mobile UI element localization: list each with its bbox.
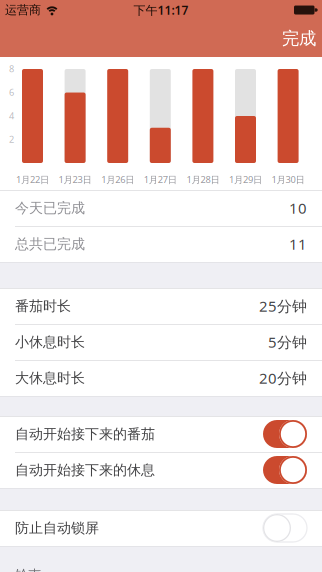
button[interactable]: 大休息时长	[0, 360, 322, 396]
button[interactable]: 完成	[282, 28, 322, 49]
staticText: 番茄时长	[15, 297, 71, 315]
staticText: 运营商	[5, 2, 41, 17]
staticText: 5分钟	[268, 332, 307, 352]
staticText: 1月28日	[186, 173, 219, 186]
staticText: 1月26日	[101, 173, 134, 186]
staticText: 铃声	[15, 567, 41, 572]
button[interactable]: 自动开始接下来的休息	[0, 452, 322, 488]
button[interactable]: 小休息时长	[0, 324, 322, 360]
staticText: 下午11:17	[133, 2, 188, 18]
staticText: 10	[289, 198, 307, 218]
staticText: 完成	[282, 28, 316, 49]
staticText: 大休息时长	[15, 369, 85, 387]
staticText: 自动开始接下来的休息	[15, 461, 155, 479]
staticText: 6	[9, 86, 14, 98]
staticText: 8	[9, 62, 14, 75]
staticText: 1月22日	[16, 173, 49, 186]
staticText: 1月30日	[272, 173, 305, 186]
staticText: 小休息时长	[15, 333, 85, 351]
staticText: 总共已完成	[15, 235, 85, 253]
staticText: 11	[289, 234, 307, 254]
staticText: 2	[9, 133, 14, 145]
staticText: 今天已完成	[15, 199, 85, 217]
staticText: 1月29日	[229, 173, 262, 186]
staticText: 1月23日	[59, 173, 92, 186]
staticText: 4	[9, 109, 14, 122]
button[interactable]: 自动开始接下来的番茄	[0, 416, 322, 452]
staticText: 防止自动锁屏	[15, 519, 99, 537]
button[interactable]: 防止自动锁屏	[0, 510, 322, 546]
button[interactable]: 番茄时长	[0, 288, 322, 324]
staticText: 1月27日	[144, 173, 177, 186]
staticText: 自动开始接下来的番茄	[15, 425, 155, 443]
staticText: 20分钟	[259, 368, 307, 388]
staticText: 25分钟	[259, 296, 307, 316]
